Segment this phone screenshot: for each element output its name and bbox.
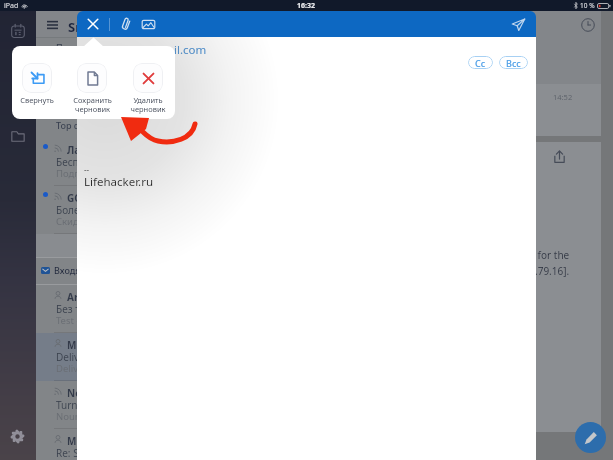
button[interactable]: Files: [11, 129, 25, 143]
staticText: --: [84, 164, 90, 175]
staticText: Test -: [56, 314, 80, 327]
button[interactable]: Bcc: [506, 56, 521, 69]
button[interactable]: Удалить черновик: [121, 46, 175, 119]
button[interactable]: Compose: [575, 422, 606, 453]
button[interactable]: Cc: [475, 56, 486, 69]
staticText: GO: [67, 191, 83, 205]
staticText: Lifehacker.ru: [84, 174, 153, 190]
button[interactable]: Calendar: [11, 24, 25, 38]
staticText: Re: S: [56, 446, 79, 460]
staticText: Пром: [56, 41, 81, 53]
staticText: Без т: [56, 302, 80, 316]
button[interactable]: Ar: [36, 285, 80, 333]
staticText: Deliv: [56, 350, 80, 364]
staticText: Bcc: [506, 57, 521, 69]
staticText: Удалить черновик: [130, 95, 166, 114]
staticText: Cc: [475, 57, 486, 69]
button[interactable]: M: [36, 429, 80, 460]
staticText: Бесп: [56, 155, 79, 169]
staticText: Боле: [56, 203, 80, 217]
button[interactable]: Свернуть: [12, 46, 64, 119]
staticText: for the: [535, 248, 570, 262]
button[interactable]: Close: [87, 18, 99, 30]
button[interactable]: Send: [512, 18, 525, 31]
staticText: iPad: [4, 1, 19, 11]
button[interactable]: Settings: [11, 430, 24, 443]
button[interactable]: Snooze: [581, 18, 595, 32]
staticText: M: [67, 434, 77, 448]
staticText: Подп: [56, 167, 81, 180]
staticText: 16:32: [297, 1, 315, 11]
staticText: Top d: [56, 119, 80, 131]
button[interactable]: Ne: [36, 381, 80, 429]
staticText: M: [67, 338, 77, 352]
button[interactable]: Сохранить черновик: [65, 46, 119, 119]
staticText: Sm: [68, 18, 88, 36]
button[interactable]: Insert image: [141, 17, 156, 32]
staticText: Turni: [56, 398, 81, 412]
staticText: Noun: [56, 410, 81, 423]
staticText: Сохранить черновик: [73, 95, 112, 114]
staticText: Ne: [67, 386, 82, 400]
staticText: Deliv: [56, 362, 79, 375]
staticText: Ar: [67, 290, 79, 304]
button[interactable]: GO: [36, 186, 80, 234]
staticText: il.com: [174, 42, 207, 58]
staticText: 14:52: [553, 92, 573, 102]
staticText: Свернуть: [20, 95, 54, 105]
staticText: Входя: [54, 264, 81, 276]
button[interactable]: Attach file: [119, 17, 133, 31]
staticText: .79.16].: [535, 264, 570, 278]
button[interactable]: M: [36, 333, 80, 381]
button[interactable]: Share: [553, 150, 566, 163]
staticText: Скид: [56, 215, 79, 228]
staticText: Ла: [67, 143, 81, 157]
button[interactable]: Ла: [36, 138, 80, 186]
staticText: 10 %: [580, 1, 595, 10]
